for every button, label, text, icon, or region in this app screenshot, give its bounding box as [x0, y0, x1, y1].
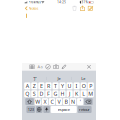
button[interactable]: “J” [23, 75, 47, 82]
button[interactable]: M [88, 90, 94, 97]
staticText: V [57, 98, 60, 105]
button[interactable]: Je [47, 75, 71, 82]
staticText: Le [81, 76, 85, 81]
button[interactable]: Camera [52, 63, 60, 71]
button[interactable]: L [81, 90, 87, 97]
staticText: espace [58, 107, 70, 112]
staticText: B [64, 98, 67, 105]
staticText: X [43, 98, 46, 105]
staticText: T [54, 82, 57, 89]
staticText: Q [25, 90, 29, 97]
button[interactable]: Hide keyboard [85, 63, 93, 71]
staticText: W [35, 98, 40, 105]
button[interactable] [43, 106, 50, 113]
button[interactable]: A [24, 82, 30, 89]
staticText: Notes [28, 6, 38, 11]
button[interactable]: Format text [36, 63, 44, 71]
button[interactable]: espace [51, 106, 77, 113]
button[interactable]: D [38, 90, 44, 97]
button[interactable]: Markup [60, 63, 68, 71]
staticText: Je [57, 76, 60, 81]
button[interactable]: U [66, 82, 73, 89]
staticText: C [50, 98, 53, 105]
staticText: M [88, 90, 93, 97]
staticText: Proximus [29, 0, 41, 4]
staticText: R [47, 82, 50, 89]
button[interactable]: Le [71, 75, 95, 82]
button[interactable]: B [63, 98, 69, 105]
staticText: F [47, 90, 50, 97]
button[interactable]: 123 [26, 106, 35, 113]
button[interactable]: H [59, 90, 66, 97]
staticText: K [75, 90, 78, 97]
staticText: 31% [81, 0, 87, 4]
button[interactable]: V [56, 98, 62, 105]
staticText: I [76, 82, 78, 89]
staticText: Aa [37, 64, 42, 69]
button[interactable]: K [73, 90, 80, 97]
button[interactable]: retour [78, 106, 92, 113]
staticText: 123 [28, 107, 34, 112]
button[interactable]: T [52, 82, 59, 89]
button[interactable]: W [35, 98, 41, 105]
button[interactable]: Share [78, 5, 86, 12]
button[interactable]: I [73, 82, 80, 89]
staticText: U [68, 82, 72, 89]
button[interactable]: N [70, 98, 76, 105]
button[interactable]: F [45, 90, 51, 97]
staticText: J [69, 90, 70, 97]
button[interactable]: S [31, 90, 37, 97]
button[interactable]: O [81, 82, 87, 89]
staticText: G [53, 90, 57, 97]
button[interactable]: Table [28, 63, 36, 71]
button[interactable]: Checklist [44, 63, 52, 71]
button[interactable]: E [38, 82, 44, 89]
staticText: retour [79, 107, 90, 112]
button[interactable] [36, 106, 42, 113]
staticText: E [40, 82, 43, 89]
button[interactable]: X [42, 98, 48, 105]
button[interactable]: Q [24, 90, 30, 97]
button[interactable]: R [45, 82, 51, 89]
staticText: Z [33, 82, 36, 89]
staticText: D [39, 90, 43, 97]
staticText: S [33, 90, 36, 97]
button[interactable]: Y [59, 82, 66, 89]
staticText: A [26, 82, 29, 89]
button[interactable]: Notes [22, 5, 40, 12]
staticText: ' [80, 98, 81, 105]
staticText: “J” [33, 76, 36, 81]
button[interactable]: J [66, 90, 73, 97]
button[interactable]: ' [77, 98, 83, 105]
button[interactable]: P [88, 82, 94, 89]
button[interactable] [25, 98, 34, 105]
staticText: 14:25 [57, 0, 66, 4]
button[interactable]: Delete note [70, 5, 78, 12]
staticText: L [82, 90, 85, 97]
staticText: P [89, 82, 92, 89]
button[interactable] [84, 98, 93, 105]
button[interactable]: C [49, 98, 55, 105]
staticText: Y [61, 82, 64, 89]
staticText: H [60, 90, 64, 97]
button[interactable]: G [52, 90, 59, 97]
staticText: N [71, 98, 75, 105]
button[interactable]: Z [31, 82, 37, 89]
staticText: O [82, 82, 86, 89]
button[interactable]: New note [86, 5, 94, 12]
